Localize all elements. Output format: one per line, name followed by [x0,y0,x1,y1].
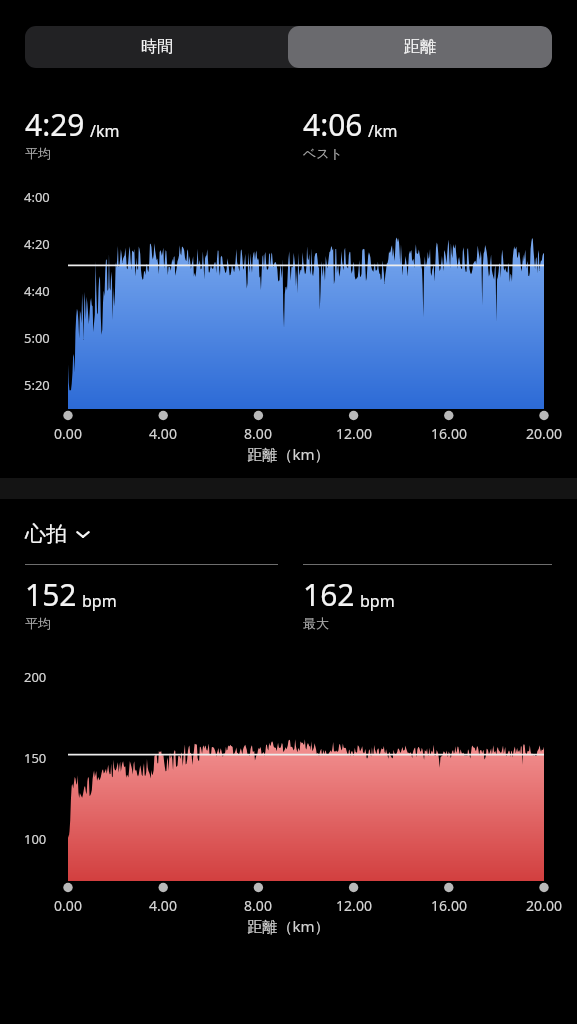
staticText: bpm [360,590,395,612]
staticText: 4:06 [303,104,363,145]
staticText: 100 [24,830,47,848]
button[interactable]: 時間 [25,26,288,68]
staticText: 162 [303,574,355,615]
staticText: 時間 [141,37,173,57]
staticText: 12.00 [328,424,380,443]
staticText: 200 [24,668,47,686]
staticText: 最大 [303,615,329,631]
staticText: 平均 [25,145,51,161]
staticText: /km [368,120,398,142]
staticText: 12.00 [328,896,380,915]
other: Expand heart rate [74,525,92,543]
staticText: 距離 [404,37,436,57]
staticText: /km [90,120,120,142]
staticText: 距離（km） [0,444,577,464]
staticText: 4:40 [24,282,50,300]
staticText: 150 [24,749,47,767]
staticText: 4:00 [24,188,50,206]
staticText: 0.00 [42,424,94,443]
staticText: 152 [25,574,77,615]
staticText: 8.00 [232,424,284,443]
staticText: 20.00 [518,424,570,443]
staticText: 4.00 [137,424,189,443]
staticText: 4:29 [25,104,85,145]
staticText: 距離（km） [0,916,577,936]
staticText: 16.00 [423,896,475,915]
staticText: 8.00 [232,896,284,915]
staticText: 20.00 [518,896,570,915]
staticText: 5:20 [24,376,50,394]
staticText: 4:20 [24,235,50,253]
staticText: 平均 [25,615,51,631]
staticText: 心拍 [25,521,67,547]
staticText: 16.00 [423,424,475,443]
staticText: 0.00 [42,896,94,915]
staticText: ベスト [303,145,343,161]
staticText: 5:00 [24,329,50,347]
staticText: 4.00 [137,896,189,915]
staticText: bpm [82,590,117,612]
button[interactable]: 距離 [288,26,552,68]
button[interactable]: 心拍 [25,521,92,547]
